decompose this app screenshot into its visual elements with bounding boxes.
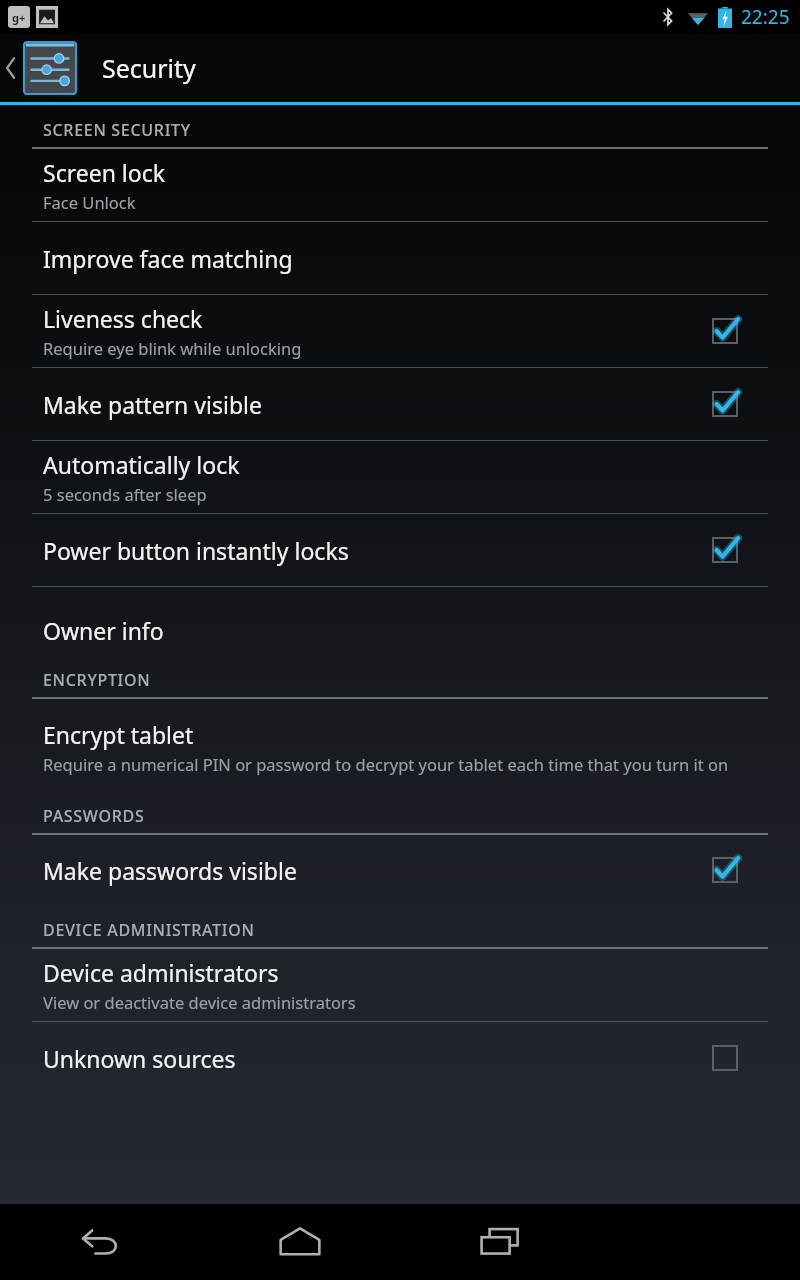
- staticText: DEVICE ADMINISTRATION: [43, 919, 255, 941]
- staticText: Unknown sources: [43, 1043, 236, 1074]
- staticText: g+: [12, 10, 26, 25]
- button[interactable]: Encrypt tablet: [0, 699, 800, 795]
- staticText: Owner info: [43, 615, 164, 646]
- button[interactable]: Recent apps: [400, 1204, 600, 1280]
- button[interactable]: Unchecked: [708, 1041, 742, 1075]
- staticText: Power button instantly locks: [43, 535, 349, 566]
- staticText: Screen lock: [43, 157, 166, 188]
- staticText: Make passwords visible: [43, 855, 297, 886]
- staticText: Improve face matching: [43, 243, 293, 274]
- staticText: Device administrators: [43, 957, 279, 988]
- button[interactable]: Owner info: [0, 601, 800, 659]
- staticText: Require eye blink while unlocking: [43, 337, 302, 359]
- button[interactable]: Improve face matching: [0, 222, 800, 294]
- button[interactable]: Automatically lock: [0, 441, 800, 513]
- button[interactable]: Back: [0, 1204, 200, 1280]
- staticText: Automatically lock: [43, 449, 240, 480]
- staticText: 5 seconds after sleep: [43, 483, 207, 505]
- button[interactable]: Screen lock: [0, 149, 800, 221]
- staticText: Liveness check: [43, 303, 203, 334]
- staticText: Make pattern visible: [43, 389, 262, 420]
- staticText: Face Unlock: [43, 191, 136, 213]
- button[interactable]: Home: [200, 1204, 400, 1280]
- staticText: SCREEN SECURITY: [43, 119, 191, 141]
- button[interactable]: Unknown sources: [0, 1022, 800, 1094]
- button[interactable]: Checked: [708, 533, 742, 567]
- button[interactable]: Make pattern visible: [0, 368, 800, 440]
- button[interactable]: Navigate up: [0, 34, 800, 102]
- button[interactable]: Checked: [708, 314, 742, 348]
- staticText: ENCRYPTION: [43, 669, 151, 691]
- staticText: Require a numerical PIN or password to d…: [43, 753, 729, 775]
- button[interactable]: Make passwords visible: [0, 835, 800, 905]
- button[interactable]: Power button instantly locks: [0, 514, 800, 586]
- button[interactable]: Checked: [708, 853, 742, 887]
- staticText: PASSWORDS: [43, 805, 145, 827]
- staticText: Security: [102, 51, 196, 85]
- button[interactable]: Checked: [708, 387, 742, 421]
- button[interactable]: Device administrators: [0, 949, 800, 1021]
- staticText: 22:25: [741, 4, 790, 30]
- staticText: View or deactivate device administrators: [43, 991, 356, 1013]
- button[interactable]: Liveness check: [0, 295, 800, 367]
- staticText: Encrypt tablet: [43, 719, 194, 750]
